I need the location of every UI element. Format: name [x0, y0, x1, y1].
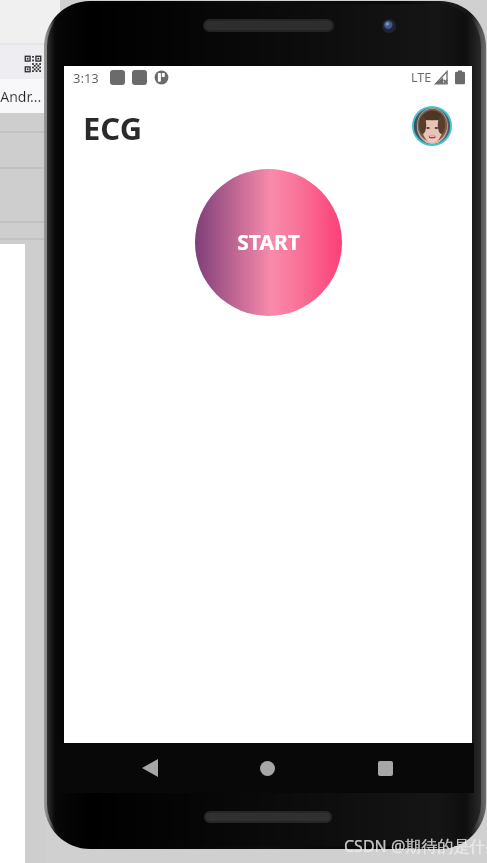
staticText: 3:13 — [73, 69, 99, 87]
staticText: LTE — [411, 69, 432, 86]
staticText: START — [237, 228, 300, 257]
button[interactable]: Back — [91, 743, 209, 793]
button[interactable]: Recents — [326, 743, 444, 793]
button[interactable]: ECG — [83, 107, 143, 149]
staticText: ECG — [83, 107, 143, 149]
staticText: CSDN @期待的是什么 — [344, 835, 487, 857]
button[interactable]: Home — [209, 743, 326, 793]
button[interactable]: START — [195, 169, 342, 316]
button[interactable]: Profile — [412, 106, 452, 146]
staticText: (Andr... — [0, 87, 42, 106]
